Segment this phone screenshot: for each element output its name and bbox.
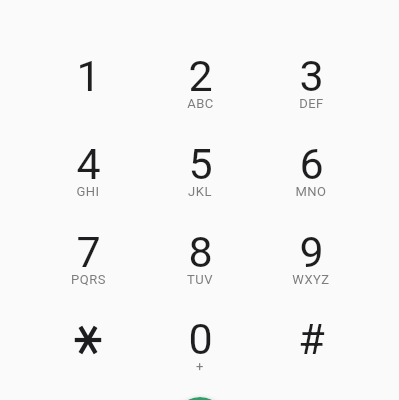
button[interactable]: # [255, 307, 367, 395]
staticText: GHI [76, 184, 100, 199]
staticText: 6 [299, 139, 324, 189]
staticText: PQRS [71, 272, 106, 287]
button[interactable]: 3 [255, 44, 367, 132]
staticText: # [298, 314, 325, 364]
staticText: 0 [188, 314, 213, 364]
staticText: 8 [188, 227, 213, 277]
button[interactable]: star [32, 307, 144, 395]
staticText: MNO [295, 184, 327, 199]
staticText: TUV [187, 272, 213, 287]
staticText: 5 [188, 139, 213, 189]
button[interactable]: 4 [32, 132, 144, 220]
button[interactable]: 0 [144, 307, 256, 395]
staticText: 9 [299, 227, 324, 277]
button[interactable]: 5 [144, 132, 256, 220]
button[interactable]: 6 [255, 132, 367, 220]
button[interactable]: 1 [32, 44, 144, 132]
staticText: ABC [187, 96, 214, 111]
button[interactable]: 9 [255, 220, 367, 308]
staticText: 4 [76, 139, 101, 189]
staticText: 7 [76, 227, 101, 277]
staticText: WXYZ [292, 272, 330, 287]
button[interactable]: 8 [144, 220, 256, 308]
staticText: JKL [188, 184, 212, 199]
button[interactable]: 2 [144, 44, 256, 132]
button[interactable]: Call [172, 397, 228, 400]
staticText: 2 [188, 51, 213, 101]
staticText: + [196, 359, 204, 374]
staticText: 3 [299, 51, 324, 101]
staticText: DEF [299, 96, 324, 111]
button[interactable]: 7 [32, 220, 144, 308]
staticText: 1 [76, 51, 101, 101]
